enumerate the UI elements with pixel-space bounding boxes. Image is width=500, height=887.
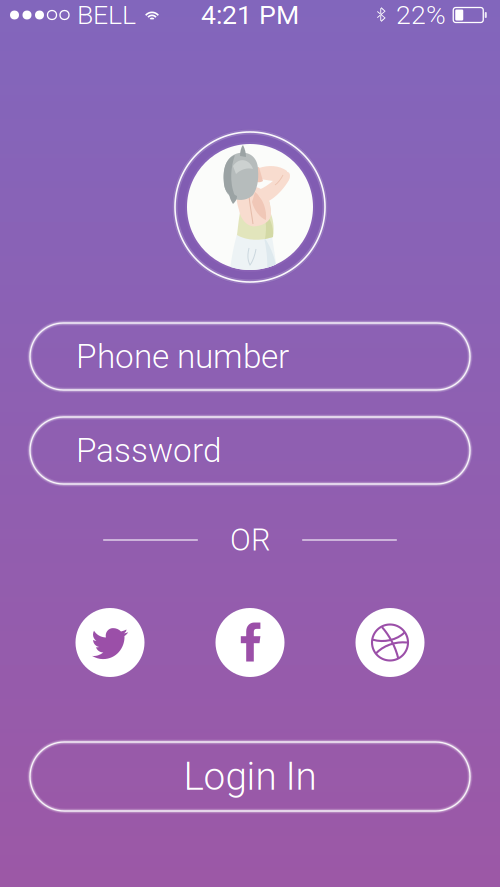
staticText: OR [230,522,270,558]
button[interactable]: Sign in with Twitter [75,608,144,677]
staticText: 4:21 PM [201,0,299,31]
staticText: 22% [396,0,446,31]
staticText: Password [76,431,222,470]
button[interactable]: Phone number [30,323,470,390]
button[interactable]: Sign in with Dribbble [355,608,424,677]
button[interactable]: Password [30,417,470,484]
button[interactable]: Login In [30,742,470,811]
button[interactable]: Sign in with Facebook [215,608,284,677]
staticText: Login In [183,754,316,799]
staticText: Phone number [76,337,289,376]
staticText: BELL [77,0,136,31]
